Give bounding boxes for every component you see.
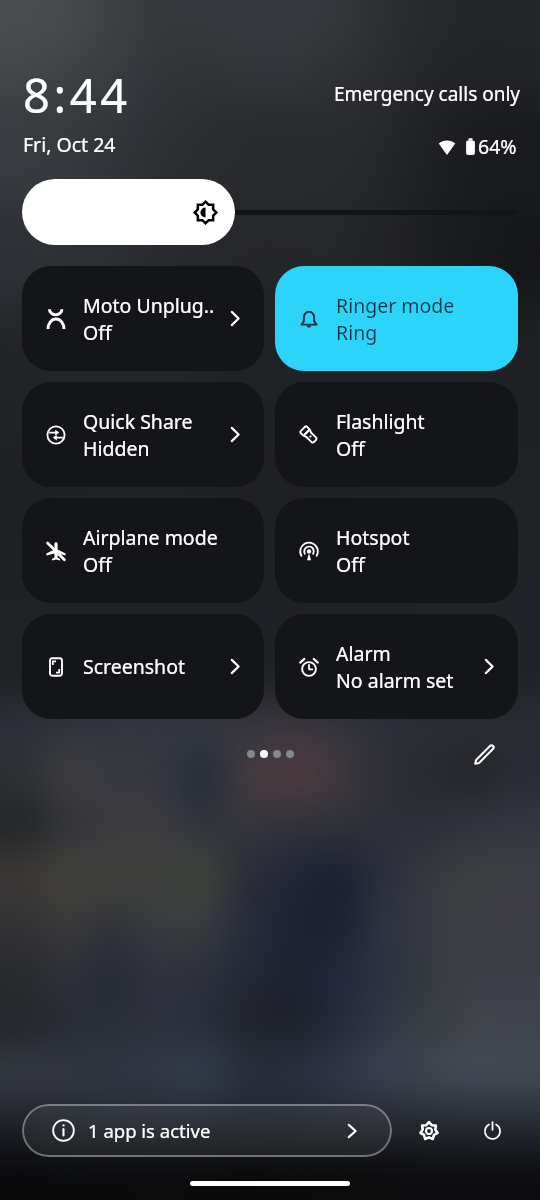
button[interactable]: Settings	[410, 1112, 447, 1149]
button[interactable]: Moto Unplug..	[22, 266, 264, 371]
button[interactable]: Alarm	[275, 614, 518, 719]
button[interactable]: Ringer mode	[275, 266, 518, 371]
staticText: Hidden	[83, 435, 150, 462]
button[interactable]: Screenshot	[22, 614, 264, 719]
staticText: Fri, Oct 24	[23, 131, 116, 158]
staticText: Off	[336, 551, 365, 578]
button[interactable]: Flashlight	[275, 382, 518, 487]
button[interactable]: 1 app is active	[22, 1104, 392, 1157]
staticText: Screenshot	[83, 653, 186, 680]
staticText: Moto Unplug..	[83, 292, 215, 319]
staticText: Off	[83, 551, 112, 578]
button[interactable]: Airplane mode	[22, 498, 264, 603]
staticText: Ring	[336, 319, 378, 346]
staticText: Alarm	[336, 640, 391, 667]
staticText: Off	[336, 435, 365, 462]
button[interactable]: Power	[474, 1112, 511, 1149]
staticText: Quick Share	[83, 408, 193, 435]
staticText: Flashlight	[336, 408, 425, 435]
staticText: Off	[83, 319, 112, 346]
staticText: 64%	[478, 133, 517, 160]
button[interactable]: Edit tiles	[468, 740, 500, 768]
staticText: 1 app is active	[88, 1118, 211, 1143]
button[interactable]: Brightness	[22, 179, 235, 245]
staticText: Ringer mode	[336, 292, 455, 319]
staticText: Airplane mode	[83, 524, 218, 551]
button[interactable]: Quick Share	[22, 382, 264, 487]
staticText: 8:44	[23, 63, 131, 127]
staticText: Emergency calls only	[334, 81, 521, 107]
staticText: No alarm set	[336, 667, 454, 694]
button[interactable]: Hotspot	[275, 498, 518, 603]
staticText: Hotspot	[336, 524, 410, 551]
